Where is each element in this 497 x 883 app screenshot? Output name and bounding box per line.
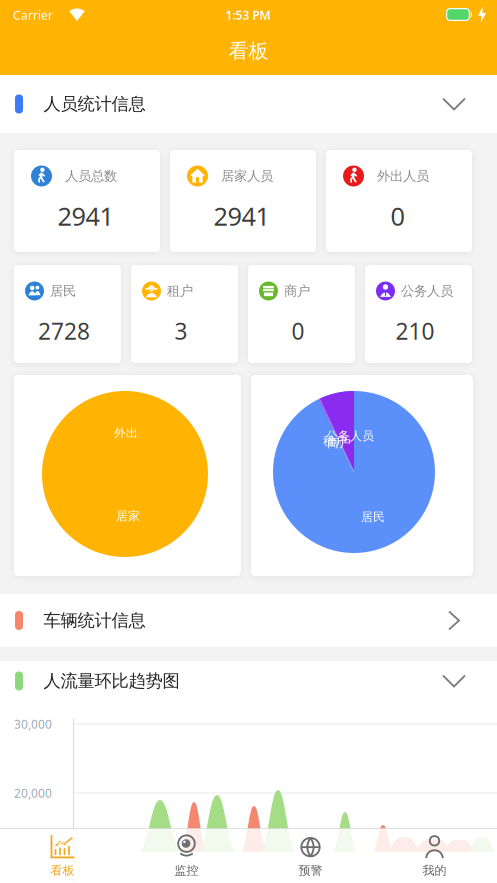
staticText: 外出人员: [377, 168, 429, 184]
staticText: 车辆统计信息: [43, 610, 145, 631]
staticText: 租户: [323, 434, 347, 448]
staticText: 租户: [167, 283, 193, 299]
button[interactable]: 人流量环比趋势图: [0, 661, 497, 701]
staticText: 2941: [213, 199, 269, 233]
staticText: 居家人员: [221, 168, 273, 184]
staticText: 210: [395, 316, 434, 346]
staticText: 居民: [50, 283, 76, 299]
button[interactable]: 人员统计信息: [0, 75, 497, 133]
button[interactable]: 看板: [0, 828, 124, 883]
staticText: 人员统计信息: [43, 93, 145, 115]
staticText: 公务人员: [401, 283, 453, 299]
staticText: 20,000: [14, 785, 52, 801]
button[interactable]: 车辆统计信息: [0, 594, 497, 647]
staticText: 居民: [361, 510, 385, 524]
staticText: 人流量环比趋势图: [43, 670, 179, 692]
staticText: 1:53 PM: [225, 7, 270, 23]
staticText: 商户: [284, 283, 310, 299]
staticText: Carrier: [13, 7, 53, 23]
staticText: 0: [390, 199, 404, 233]
button[interactable]: 我的: [372, 828, 496, 883]
staticText: 2941: [57, 199, 113, 233]
staticText: 人员总数: [65, 168, 117, 184]
staticText: 2728: [38, 316, 90, 346]
staticText: 居家: [116, 509, 140, 523]
staticText: 预警: [298, 863, 322, 878]
staticText: 看板: [228, 39, 268, 63]
staticText: 公务人员: [326, 429, 374, 443]
staticText: 3: [174, 316, 187, 346]
staticText: 30,000: [14, 716, 52, 732]
button[interactable]: 预警: [248, 828, 372, 883]
button[interactable]: 监控: [124, 828, 248, 883]
staticText: 看板: [50, 863, 74, 878]
staticText: 0: [291, 316, 304, 346]
staticText: 外出: [114, 426, 138, 440]
staticText: 监控: [174, 863, 198, 878]
staticText: 我的: [422, 863, 446, 878]
staticText: 商户: [327, 436, 351, 450]
